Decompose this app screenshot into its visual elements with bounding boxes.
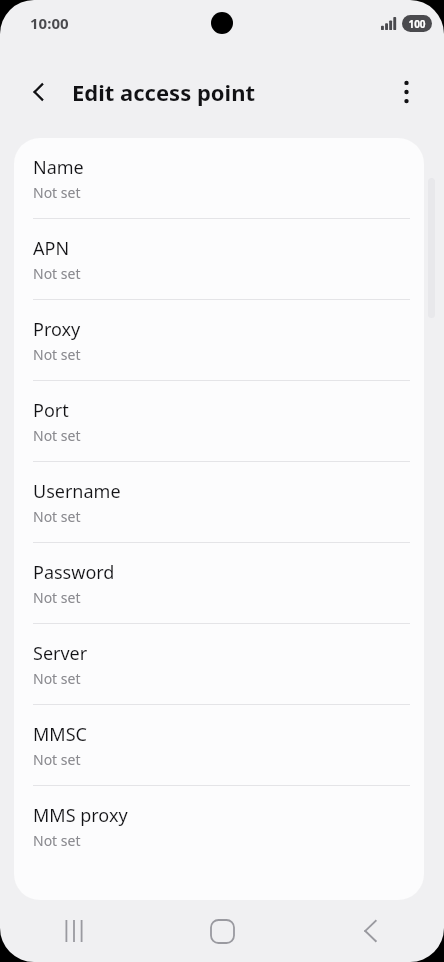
staticText: 10:00	[30, 13, 69, 33]
button[interactable]: APN	[14, 219, 424, 299]
button[interactable]: Home	[148, 900, 296, 962]
button[interactable]: Back	[18, 71, 60, 113]
staticText: Username	[33, 479, 121, 504]
staticText: Not set	[33, 264, 81, 283]
button[interactable]: Port	[14, 381, 424, 461]
button[interactable]: Password	[14, 543, 424, 623]
staticText: Edit access point	[72, 77, 255, 107]
button[interactable]: MMS proxy	[14, 786, 424, 866]
button[interactable]: Recent apps	[0, 900, 148, 962]
staticText: Name	[33, 155, 84, 180]
button[interactable]: Server	[14, 624, 424, 704]
button[interactable]: Username	[14, 462, 424, 542]
staticText: APN	[33, 236, 70, 261]
staticText: Password	[33, 560, 115, 585]
staticText: Port	[33, 398, 69, 423]
staticText: Not set	[33, 588, 81, 607]
staticText: MMS proxy	[33, 803, 128, 828]
staticText: Not set	[33, 183, 81, 202]
button[interactable]: Back	[296, 900, 444, 962]
staticText: 100	[408, 17, 426, 31]
staticText: Not set	[33, 750, 81, 769]
staticText: Not set	[33, 426, 81, 445]
staticText: Not set	[33, 345, 81, 364]
staticText: Not set	[33, 831, 81, 850]
staticText: Proxy	[33, 317, 81, 342]
button[interactable]: MMSC	[14, 705, 424, 785]
staticText: Not set	[33, 507, 81, 526]
button[interactable]: Name	[14, 138, 424, 218]
staticText: Server	[33, 641, 88, 666]
staticText: Not set	[33, 669, 81, 688]
staticText: MMSC	[33, 722, 87, 747]
button[interactable]: More options	[384, 70, 428, 114]
button[interactable]: Proxy	[14, 300, 424, 380]
